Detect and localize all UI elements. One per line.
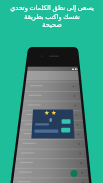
staticText: نفسك واكتب بطريقة bbox=[24, 12, 80, 21]
staticText: صحيحة bbox=[42, 21, 62, 29]
staticText: يسعى إلى نطق الكلمات وتحدي bbox=[10, 3, 94, 12]
